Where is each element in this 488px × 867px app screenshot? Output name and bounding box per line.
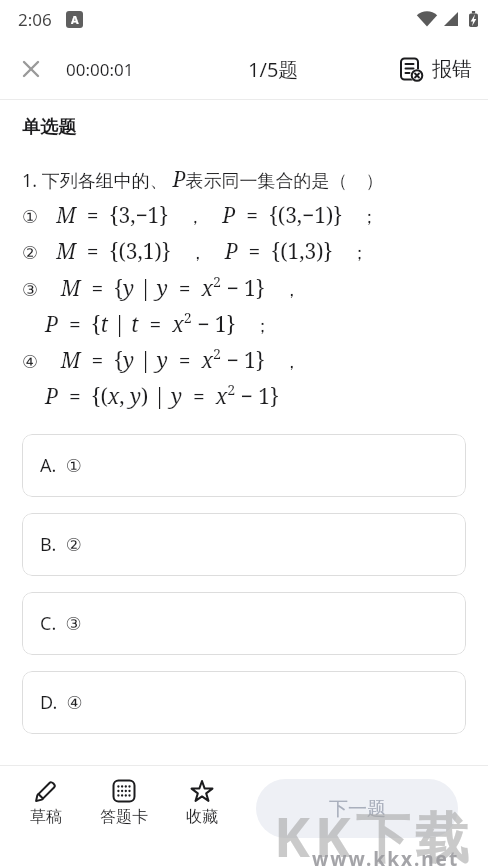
button[interactable]: 收藏 — [163, 779, 241, 827]
staticText: A. ① — [40, 453, 82, 478]
staticText: 下一题 — [329, 797, 386, 821]
staticText: ④ M = {y | y = x2 − 1} ， — [22, 344, 301, 374]
staticText: B. ② — [40, 532, 82, 557]
staticText: 1/5题 — [248, 56, 299, 83]
staticText: 单选题 — [22, 116, 76, 139]
staticText: 00:00:01 — [66, 58, 134, 81]
button[interactable]: C. ③ — [22, 592, 466, 655]
staticText: 2:06 — [18, 8, 52, 31]
button[interactable]: 答题卡 — [85, 779, 163, 827]
staticText: 收藏 — [186, 807, 218, 827]
staticText: P = {t | t = x2 − 1} ； — [45, 308, 272, 338]
staticText: 1. 下列各组中的、 P表示同一集合的是（ ） — [22, 165, 384, 194]
staticText: 草稿 — [30, 807, 62, 827]
staticText: ② M = {(3,1)} ， P = {(1,3)} ； — [22, 237, 369, 266]
button[interactable] — [20, 58, 42, 80]
staticText: www.kkx.net — [312, 846, 460, 867]
staticText: KK下载 — [274, 799, 474, 867]
staticText: ① M = {3,−1} ， P = {(3,−1)} ； — [22, 201, 379, 230]
staticText: C. ③ — [40, 611, 82, 636]
staticText: P = {(x, y) | y = x2 − 1} — [45, 380, 279, 410]
button[interactable]: D. ④ — [22, 671, 466, 734]
staticText: D. ④ — [40, 690, 83, 715]
button[interactable]: B. ② — [22, 513, 466, 576]
staticText: 报错 — [432, 57, 472, 82]
button[interactable]: 报错 — [399, 57, 472, 82]
staticText: A — [71, 12, 79, 27]
button[interactable]: 草稿 — [7, 779, 85, 827]
button[interactable]: A. ① — [22, 434, 466, 497]
staticText: 答题卡 — [100, 807, 148, 827]
staticText: ③ M = {y | y = x2 − 1} ， — [22, 272, 301, 302]
button[interactable]: 下一题 — [256, 779, 458, 838]
